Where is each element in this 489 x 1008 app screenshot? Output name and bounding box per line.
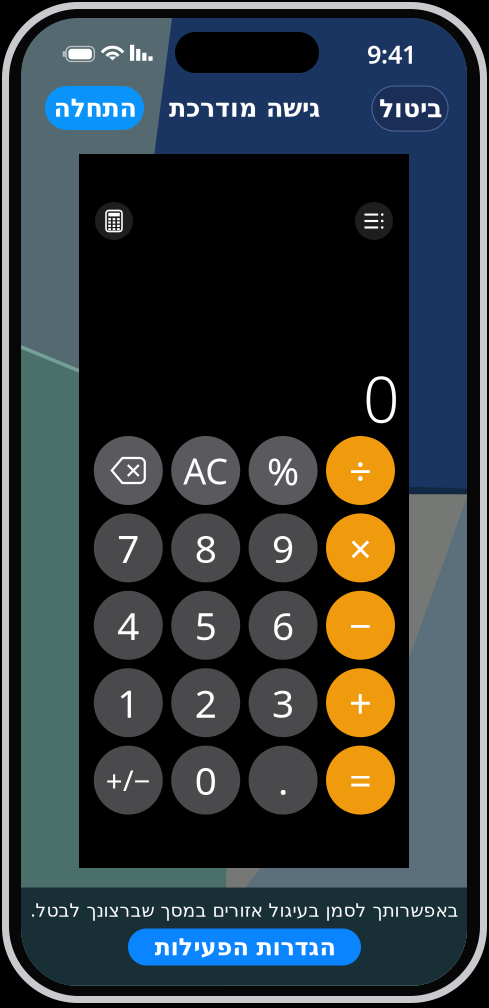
button[interactable]: 0	[171, 746, 240, 815]
staticText: 4	[117, 600, 139, 651]
staticText: −	[349, 599, 372, 652]
button[interactable]: ×	[326, 513, 395, 582]
button[interactable]: %	[249, 436, 318, 505]
button[interactable]: 2	[171, 668, 240, 737]
staticText: +/−	[106, 761, 151, 800]
button[interactable]: 9	[249, 513, 318, 582]
staticText: 3	[272, 677, 294, 728]
staticText: התחלה	[53, 94, 136, 122]
staticText: .	[278, 754, 288, 806]
staticText: 0	[363, 355, 400, 440]
button[interactable]: +/−	[94, 746, 163, 815]
button[interactable]: התחלה	[45, 86, 144, 130]
staticText: 7	[117, 522, 139, 573]
button[interactable]: 6	[249, 591, 318, 660]
staticText: 9:41	[367, 37, 416, 71]
staticText: %	[267, 445, 299, 496]
button[interactable]: 5	[171, 591, 240, 660]
button[interactable]: Delete	[94, 436, 163, 505]
button[interactable]: AC	[171, 436, 240, 505]
button[interactable]: History	[355, 202, 393, 240]
staticText: באפשרותך לסמן בעיגול אזורים במסך שברצונך…	[30, 897, 458, 922]
staticText: 8	[195, 522, 217, 573]
button[interactable]: 1	[94, 668, 163, 737]
button[interactable]: ÷	[326, 436, 395, 505]
button[interactable]: 8	[171, 513, 240, 582]
staticText: 6	[272, 600, 294, 651]
button[interactable]: הגדרות הפעילות	[128, 928, 361, 965]
button[interactable]: Calculator modes	[95, 202, 133, 240]
button[interactable]: −	[326, 591, 395, 660]
staticText: הגדרות הפעילות	[154, 933, 335, 961]
button[interactable]: +	[326, 668, 395, 737]
staticText: 2	[195, 677, 217, 728]
staticText: ÷	[349, 444, 372, 497]
button[interactable]: ביטול	[372, 86, 448, 131]
button[interactable]: 7	[94, 513, 163, 582]
staticText: גישה מודרכת	[168, 94, 319, 122]
button[interactable]: .	[249, 746, 318, 815]
staticText: ×	[349, 521, 372, 574]
button[interactable]: =	[326, 746, 395, 815]
button[interactable]: 4	[94, 591, 163, 660]
staticText: AC	[183, 447, 228, 494]
staticText: =	[349, 753, 372, 807]
button[interactable]: 3	[249, 668, 318, 737]
staticText: 5	[195, 600, 217, 651]
staticText: 9	[272, 522, 294, 573]
staticText: 1	[117, 677, 139, 728]
staticText: +	[348, 675, 372, 730]
staticText: 0	[195, 754, 217, 806]
staticText: ביטול	[378, 94, 441, 123]
